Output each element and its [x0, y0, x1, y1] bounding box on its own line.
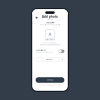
button[interactable]: Continue — [36, 77, 64, 83]
staticText: Take a selfie — [45, 22, 54, 24]
button[interactable]: Upload photo — [45, 30, 54, 38]
staticText: Save to library — [36, 49, 47, 51]
button[interactable]: Back — [35, 16, 39, 19]
button[interactable]: Save to library — [32, 48, 68, 54]
button[interactable]: Standard — [36, 57, 64, 62]
staticText: JPG or PNG, up to 5 MB — [43, 42, 56, 44]
staticText: Add photo — [42, 15, 58, 18]
staticText: You can change this later in settings — [38, 84, 61, 86]
staticText: Standard — [46, 59, 53, 60]
staticText: step 2 of 4 — [47, 19, 53, 20]
staticText: Select photo — [45, 39, 55, 41]
staticText: We use it to confirm your identity — [40, 24, 60, 26]
staticText: Keep a copy on this device — [36, 51, 54, 53]
staticText: Continue — [46, 79, 53, 81]
